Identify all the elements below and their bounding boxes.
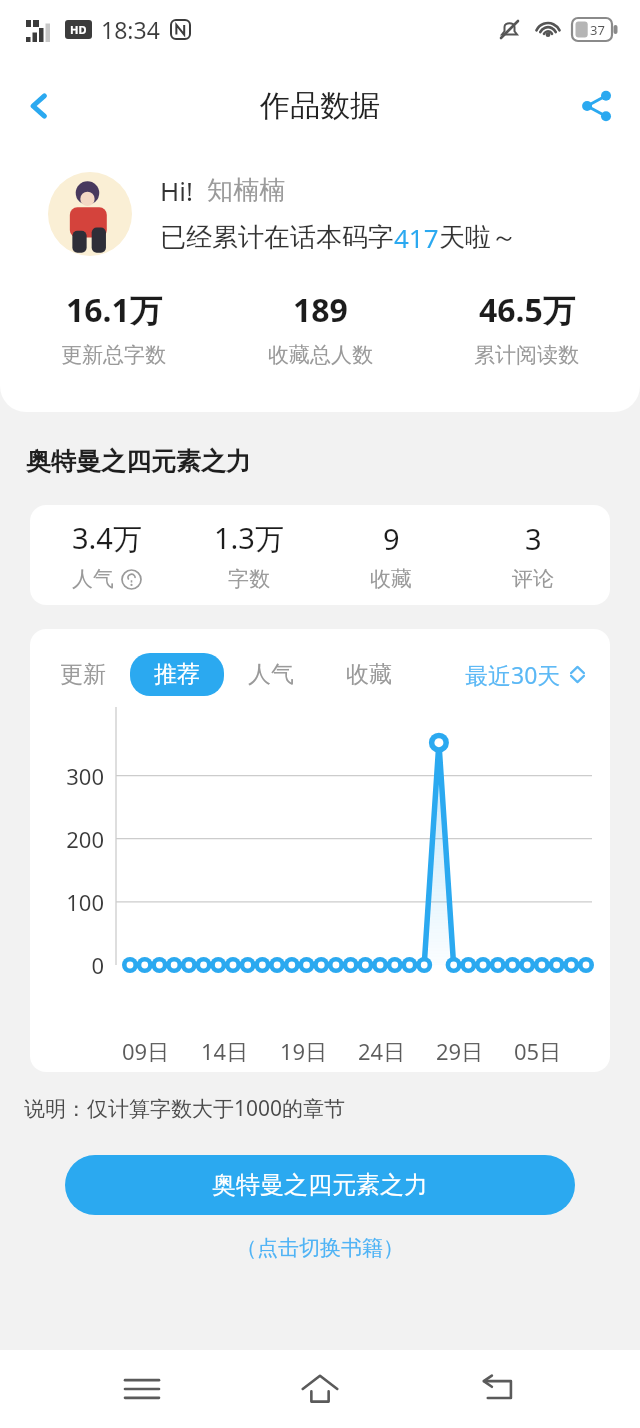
staticText: 189 [293,288,348,332]
button[interactable]: Share [568,77,626,135]
staticText: 9 [383,519,400,558]
button[interactable]: 人气 [238,653,304,696]
staticText: 知楠楠 [207,174,285,207]
staticText: 天啦～ [439,221,517,254]
button[interactable]: 46.5万 [434,288,619,368]
staticText: 05日 [514,1036,562,1066]
staticText: 已经累计在话本码字 [160,221,394,254]
button[interactable]: Recent apps [106,1353,178,1425]
staticText: 14日 [201,1036,249,1066]
button[interactable]: 189 [228,288,413,368]
staticText: 300 [36,761,104,791]
button[interactable]: Home [284,1353,356,1425]
staticText: 更新 [60,660,106,689]
button[interactable]: 推荐 [130,653,224,696]
staticText: 200 [36,824,104,854]
staticText: 最近30天 [465,659,561,690]
staticText: 3 [525,519,542,558]
staticText: 人气 [248,660,294,689]
staticText: 417 [394,220,439,255]
staticText: 字数 [228,566,270,592]
staticText: （点击切换书籍） [236,1235,404,1261]
staticText: 奥特曼之四元素之力 [26,446,251,477]
button[interactable]: 奥特曼之四元素之力 [65,1155,575,1215]
staticText: 19日 [280,1036,328,1066]
staticText: 09日 [122,1036,170,1066]
staticText: 奥特曼之四元素之力 [212,1170,428,1200]
button[interactable]: Back [462,1353,534,1425]
button[interactable]: 最近30天 [461,655,590,694]
staticText: 人气 [72,566,114,592]
button[interactable]: Back [10,77,68,135]
staticText: 累计阅读数 [474,342,579,368]
staticText: 37 [590,21,605,39]
staticText: 收藏 [346,660,392,689]
staticText: HD [70,22,87,37]
staticText: 46.5万 [479,288,575,332]
staticText: 18:34 [101,14,160,45]
button[interactable]: 3.4万 [30,505,610,605]
staticText: Hi! [160,173,193,208]
staticText: 3.4万 [72,518,142,558]
staticText: 评论 [512,566,554,592]
staticText: 收藏 [370,566,412,592]
staticText: 29日 [436,1036,484,1066]
staticText: 作品数据 [260,87,380,125]
staticText: 16.1万 [66,288,162,332]
staticText: 说明：仅计算字数大于1000的章节 [24,1094,346,1123]
staticText: 推荐 [154,660,200,689]
button[interactable]: 收藏 [336,653,402,696]
staticText: 更新总字数 [61,342,166,368]
button[interactable]: （点击切换书籍） [0,1235,640,1261]
staticText: 24日 [358,1036,406,1066]
staticText: 0 [36,950,104,980]
staticText: 收藏总人数 [268,342,373,368]
button[interactable]: 更新 [50,653,116,696]
staticText: 1.3万 [214,518,284,558]
button[interactable]: 16.1万 [21,288,206,368]
staticText: 100 [36,887,104,917]
